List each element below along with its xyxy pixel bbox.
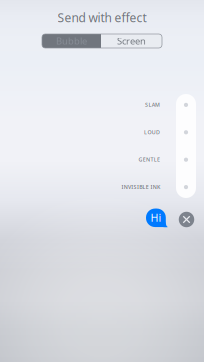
button[interactable]: GENTLE [28, 146, 168, 173]
staticText: Bubble [56, 35, 87, 47]
button[interactable]: Bubble [42, 34, 101, 48]
staticText: LOUD [144, 129, 160, 136]
button[interactable]: Screen [101, 34, 162, 48]
staticText: GENTLE [138, 156, 160, 163]
staticText: SLAM [145, 101, 160, 108]
staticText: INVISIBLE INK [121, 183, 160, 190]
button[interactable]: INVISIBLE INK [28, 173, 168, 201]
staticText: Send with effect [57, 9, 146, 25]
staticText: Screen [117, 35, 146, 47]
staticText: Hi [150, 210, 161, 225]
button[interactable]: Cancel effect [175, 208, 197, 230]
button[interactable]: LOUD [28, 118, 168, 146]
button[interactable]: SLAM [28, 91, 168, 118]
